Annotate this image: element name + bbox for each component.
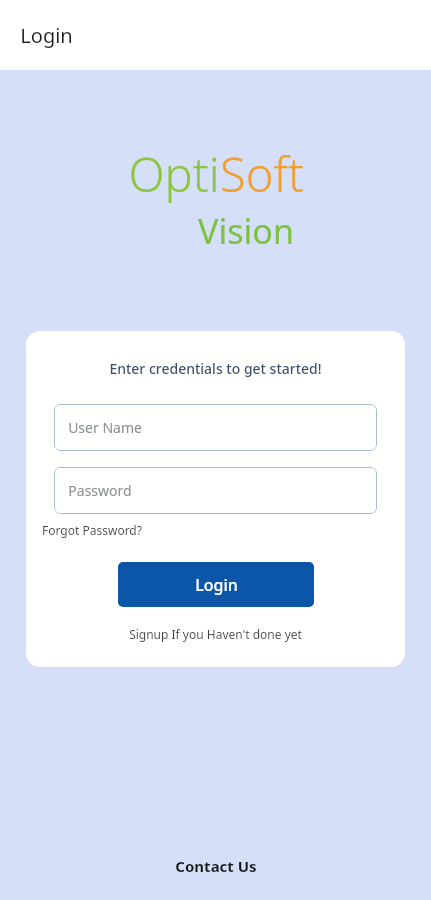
staticText: Contact Us — [175, 856, 257, 876]
button[interactable]: Password — [54, 467, 377, 514]
button[interactable]: User Name — [54, 404, 377, 451]
staticText: Login — [195, 574, 238, 596]
button[interactable]: Login — [118, 562, 314, 607]
staticText: User Name — [68, 418, 142, 437]
button[interactable]: Forgot Password? — [40, 519, 144, 541]
staticText: Login — [20, 22, 73, 49]
staticText: Vision — [198, 208, 294, 254]
staticText: Soft — [220, 142, 304, 206]
staticText: Enter credentials to get started! — [109, 359, 322, 378]
button[interactable]: Contact Us — [163, 850, 269, 882]
staticText: Opti — [128, 142, 220, 206]
staticText: Forgot Password? — [42, 522, 142, 538]
button[interactable]: Signup If you Haven't done yet — [123, 623, 308, 645]
staticText: Signup If you Haven't done yet — [129, 626, 302, 642]
staticText: Password — [68, 481, 132, 500]
